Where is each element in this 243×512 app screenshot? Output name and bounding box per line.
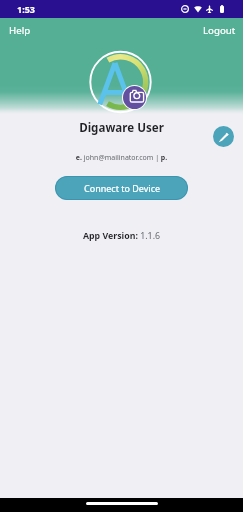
button[interactable]: Edit profile — [213, 126, 234, 147]
button[interactable]: Change profile photo — [123, 86, 146, 109]
staticText: App Version: 1.1.6 — [0, 230, 243, 242]
staticText: Help — [9, 24, 31, 37]
button[interactable]: Help — [4, 21, 36, 40]
staticText: Digaware User — [0, 120, 243, 136]
button[interactable]: Connect to Device — [55, 176, 188, 200]
staticText: Logout — [203, 24, 236, 37]
staticText: e. john@mailinator.com | p. — [0, 153, 243, 163]
staticText: 1:53 — [17, 3, 35, 15]
staticText: Connect to Device — [84, 182, 161, 194]
button[interactable]: Logout — [198, 21, 239, 40]
